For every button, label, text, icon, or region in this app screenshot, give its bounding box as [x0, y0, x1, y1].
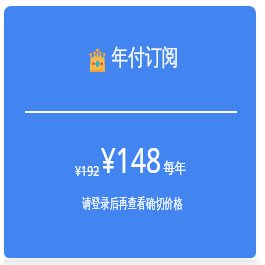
staticText: 年付订阅: [112, 43, 178, 72]
other: Premium crown: [89, 48, 106, 72]
staticText: 每年: [163, 159, 186, 178]
button[interactable]: Premium crown: [4, 6, 256, 258]
staticText: 请登录后再查看确切价格: [82, 195, 183, 212]
staticText: ¥148: [101, 137, 161, 183]
staticText: ¥192: [75, 161, 100, 180]
